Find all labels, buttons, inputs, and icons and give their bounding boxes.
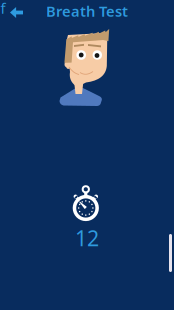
button[interactable]: Back [0,0,32,24]
staticText: Breath Test [46,1,128,21]
staticText: 12 [75,224,99,252]
staticText: f [0,0,5,18]
